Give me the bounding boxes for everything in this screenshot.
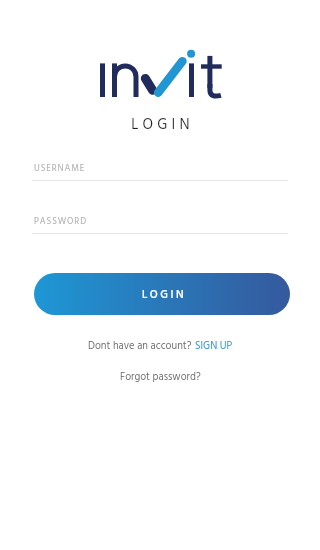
- other: invit logo: [98, 46, 222, 98]
- button[interactable]: Forgot password?: [120, 369, 201, 386]
- button[interactable]: PASSWORD: [34, 207, 290, 234]
- button[interactable]: USERNAME: [34, 154, 290, 181]
- button[interactable]: SIGN UP: [195, 338, 233, 355]
- staticText: USERNAME: [34, 162, 86, 176]
- staticText: SIGN UP: [195, 338, 233, 355]
- staticText: PASSWORD: [34, 215, 87, 229]
- staticText: LOGIN: [131, 113, 194, 137]
- staticText: LOGIN: [142, 286, 187, 304]
- staticText: Dont have an account?: [88, 338, 195, 355]
- button[interactable]: LOGIN: [34, 273, 290, 315]
- staticText: Forgot password?: [120, 369, 201, 386]
